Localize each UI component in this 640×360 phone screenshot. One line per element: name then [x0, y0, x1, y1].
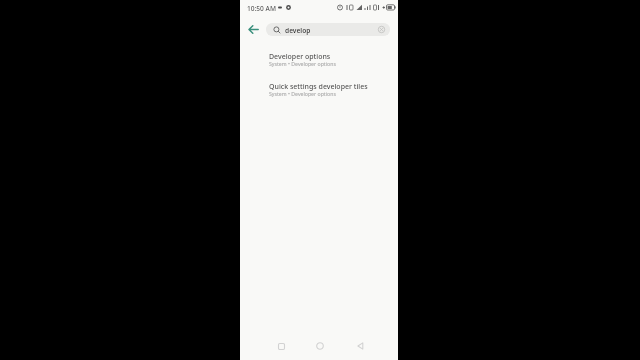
- button[interactable]: [244, 21, 262, 38]
- button[interactable]: [352, 338, 368, 354]
- staticText: System • Developer options: [269, 60, 336, 67]
- staticText: 10:50 AM: [247, 4, 276, 13]
- staticText: develop: [285, 26, 311, 35]
- button[interactable]: [312, 338, 328, 354]
- staticText: Quick settings developer tiles: [269, 82, 368, 92]
- button[interactable]: Quick settings developer tiles: [269, 82, 395, 98]
- staticText: Developer options: [269, 52, 331, 62]
- staticText: System • Developer options: [269, 90, 336, 97]
- button[interactable]: develop: [266, 23, 390, 36]
- button[interactable]: Developer options: [269, 52, 395, 68]
- button[interactable]: [273, 338, 289, 354]
